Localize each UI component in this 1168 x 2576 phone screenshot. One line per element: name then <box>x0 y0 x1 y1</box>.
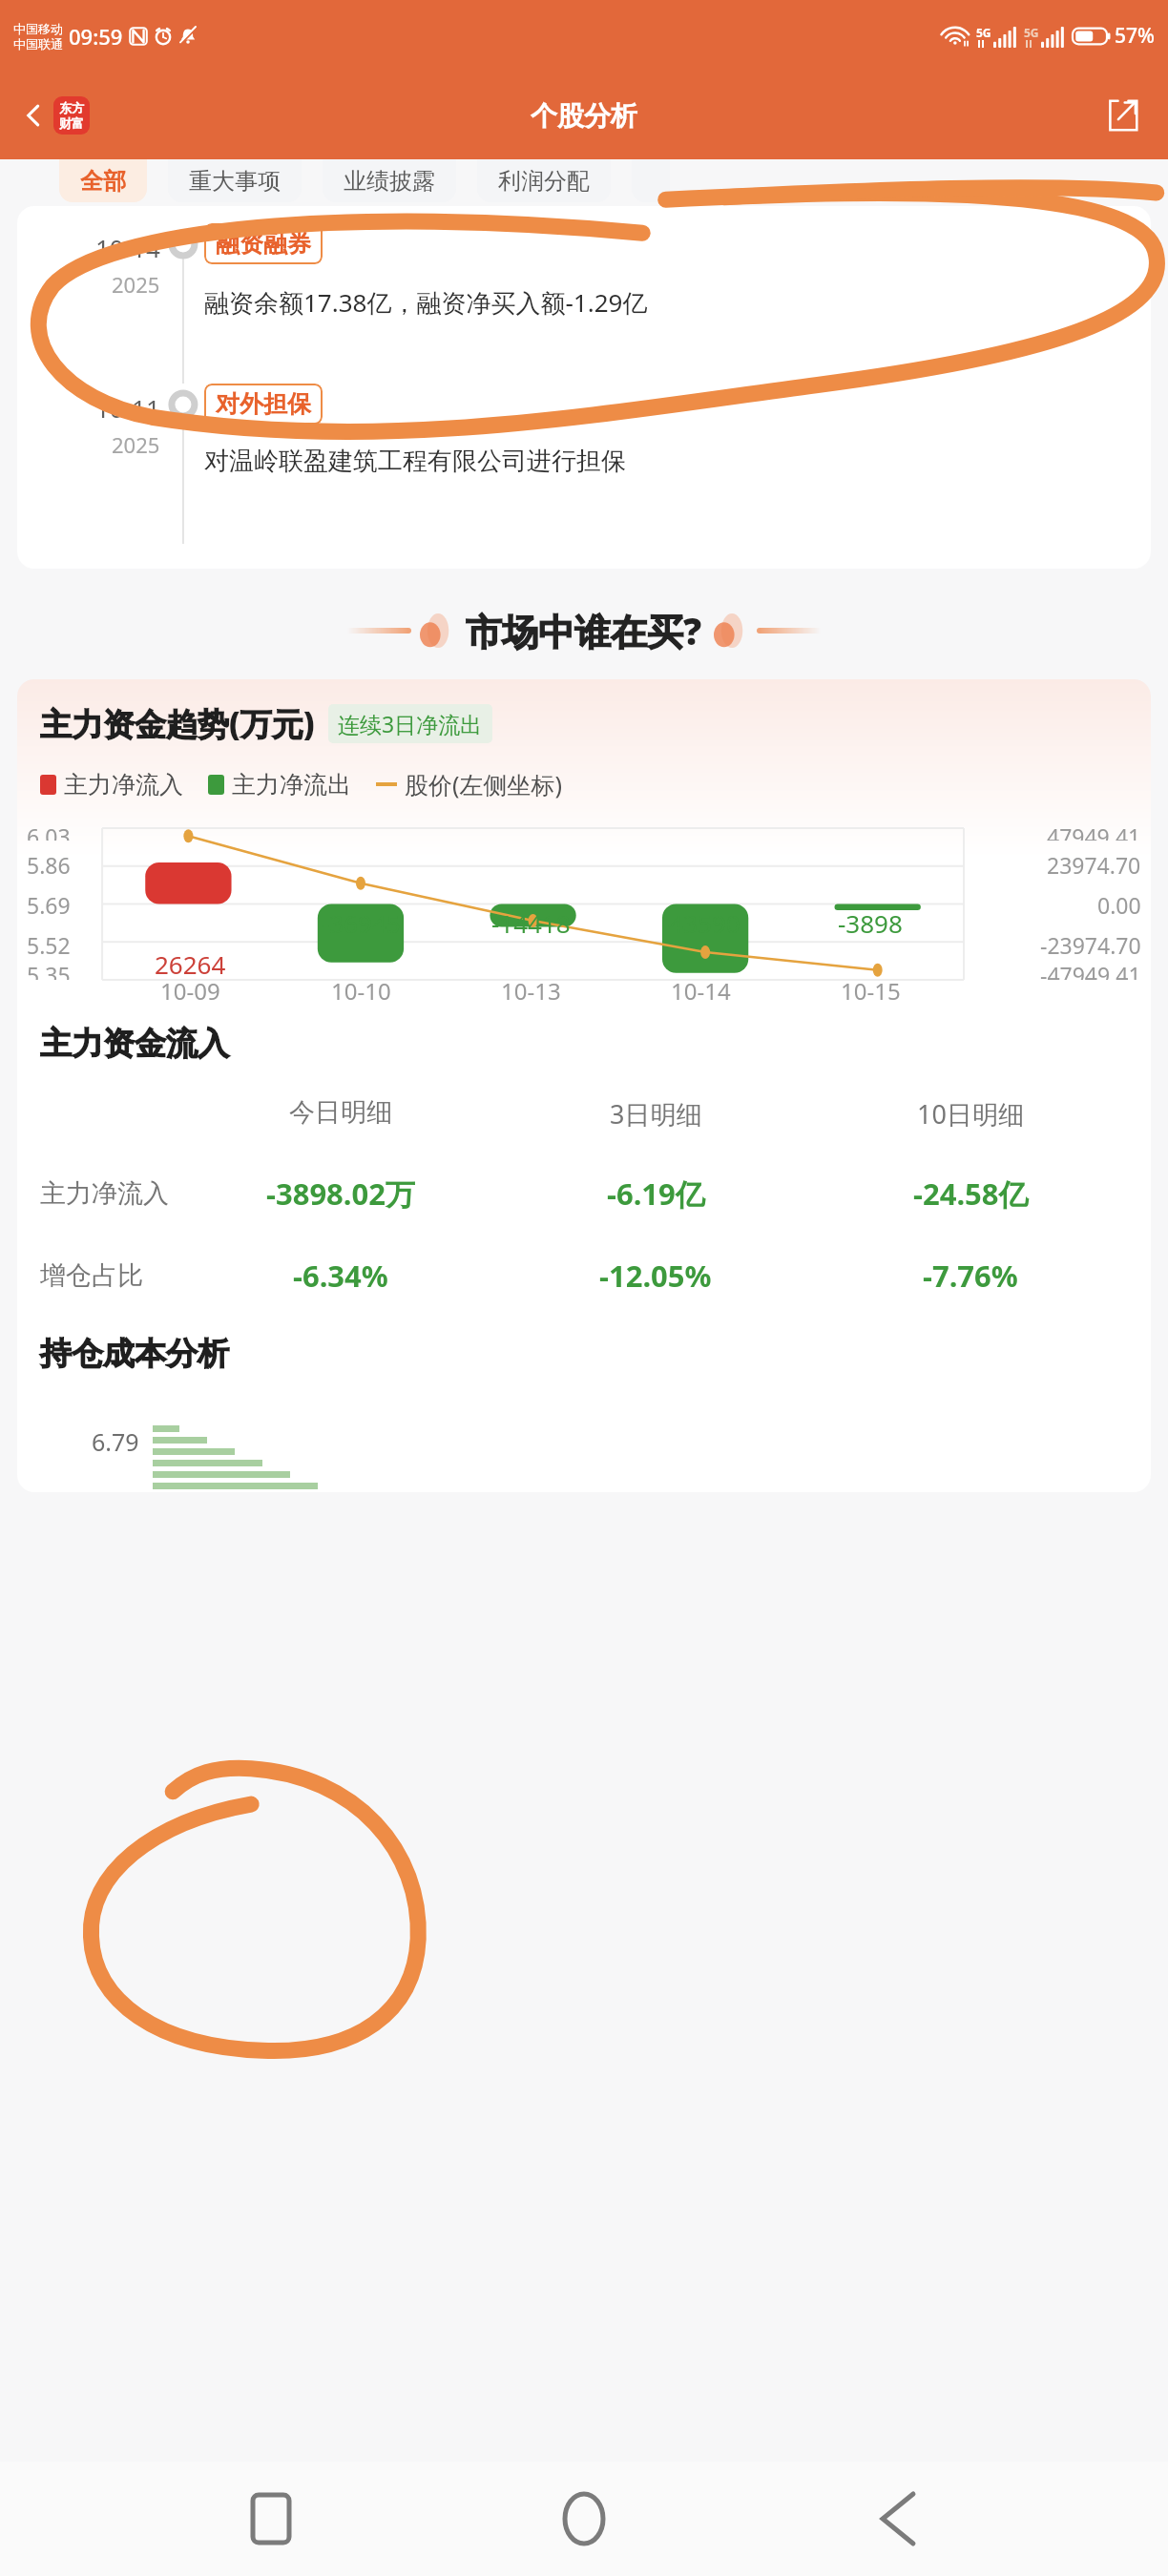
staticText: 10-13 <box>501 975 561 1007</box>
staticText: 主力净流出 <box>232 770 351 800</box>
staticText: 10-15 <box>841 975 901 1007</box>
staticText: 主力资金流入 <box>40 1024 229 1064</box>
staticText: -24.58亿 <box>913 1174 1029 1214</box>
staticText: 3日明细 <box>610 1096 702 1132</box>
button[interactable]: Recents <box>228 2476 314 2562</box>
staticText: 5.52 <box>27 930 71 960</box>
staticText: 09:59 <box>69 22 123 51</box>
staticText: 47949.41 <box>1047 821 1141 841</box>
staticText: 23974.70 <box>1047 850 1141 880</box>
staticText: 中国联通 <box>13 36 63 52</box>
staticText: 融资余额17.38亿，融资净买入额-1.29亿 <box>204 285 648 320</box>
staticText: 持仓成本分析 <box>40 1334 229 1374</box>
staticText: 10-14 <box>95 231 160 264</box>
staticText: 10-11 <box>95 391 160 425</box>
button[interactable]: Back <box>855 2476 941 2562</box>
staticText: 市场中谁在买? <box>466 606 702 655</box>
button[interactable]: 业绩披露 <box>323 159 456 202</box>
staticText: 10-09 <box>160 975 220 1007</box>
staticText: -12.05% <box>599 1256 712 1296</box>
staticText: 5G <box>1024 25 1039 40</box>
staticText: 10日明细 <box>917 1096 1024 1132</box>
staticText: 财富 <box>59 115 84 131</box>
staticText: -7.76% <box>923 1256 1018 1296</box>
staticText: 融资融券 <box>216 229 311 259</box>
button[interactable]: 10-14 <box>17 206 1151 569</box>
staticText: 0.00 <box>1097 890 1141 920</box>
staticText: 5.86 <box>27 850 71 880</box>
staticText: 东方 <box>59 100 84 115</box>
button[interactable]: 全部 <box>59 159 147 202</box>
staticText: -47949.41 <box>1040 960 1141 980</box>
staticText: 26264 <box>155 947 226 981</box>
staticText: -14418 <box>491 906 571 940</box>
staticText: 重大事项 <box>189 167 281 196</box>
staticText: 6.79 <box>92 1425 139 1458</box>
staticText: -23974.70 <box>1040 930 1141 960</box>
staticText: 今日明细 <box>289 1096 392 1129</box>
button[interactable]: 利润分配 <box>477 159 611 202</box>
staticText: 57% <box>1115 22 1155 50</box>
staticText: 10-10 <box>331 975 391 1007</box>
staticText: 对温岭联盈建筑工程有限公司进行担保 <box>204 446 626 477</box>
button[interactable]: Home <box>541 2476 627 2562</box>
button[interactable]: 分享 <box>1101 93 1145 137</box>
staticText: 主力资金趋势(万元) <box>40 702 315 745</box>
staticText: 2025 <box>112 430 160 459</box>
staticText: 主力净流入 <box>40 1177 169 1210</box>
staticText: 个股分析 <box>531 99 637 133</box>
staticText: 5.69 <box>27 890 71 920</box>
button[interactable] <box>632 159 670 202</box>
staticText: 股价(左侧坐标) <box>405 768 563 800</box>
staticText: -3898.02万 <box>266 1174 416 1214</box>
staticText: 全部 <box>80 167 126 196</box>
staticText: 利润分配 <box>498 167 590 196</box>
staticText: -3898 <box>838 906 903 940</box>
staticText: -6.34% <box>293 1256 388 1296</box>
staticText: 中国移动 <box>13 21 63 36</box>
staticText: -6.19亿 <box>607 1174 705 1214</box>
button[interactable]: 返回 东方财富 <box>17 91 94 140</box>
staticText: 5.35 <box>27 960 71 980</box>
staticText: 主力净流入 <box>64 770 183 800</box>
staticText: -36945 <box>322 906 401 940</box>
staticText: 增仓占比 <box>40 1259 143 1292</box>
button[interactable]: 重大事项 <box>168 159 302 202</box>
staticText: 连续3日净流出 <box>338 709 483 738</box>
staticText: 5G <box>976 25 991 40</box>
staticText: 2025 <box>112 270 160 299</box>
staticText: 对外担保 <box>216 389 311 419</box>
staticText: 10-14 <box>671 975 731 1007</box>
staticText: 业绩披露 <box>344 167 435 196</box>
staticText: -43590 <box>661 906 740 940</box>
staticText: 6.03 <box>27 821 71 841</box>
